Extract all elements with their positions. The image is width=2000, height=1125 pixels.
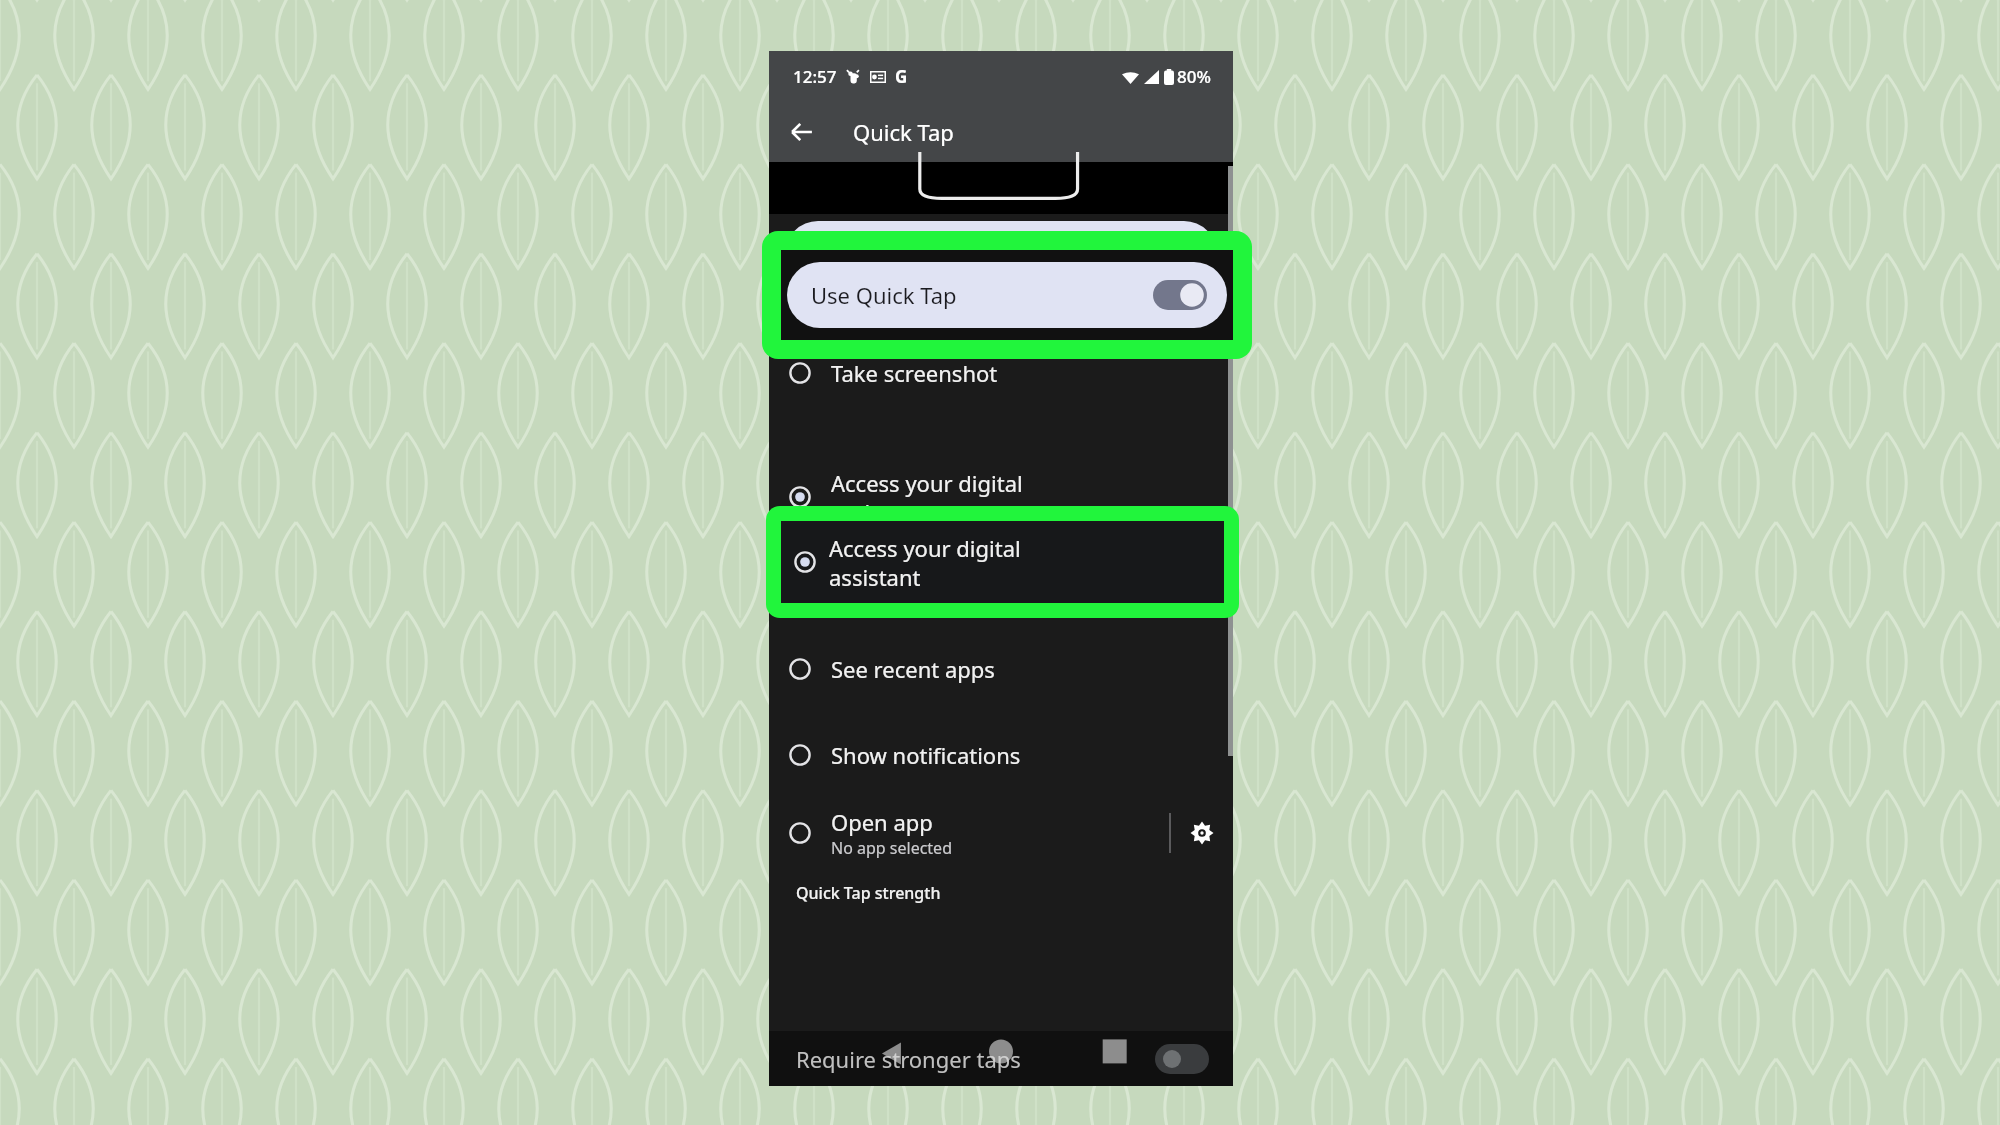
staticText: Take screenshot (831, 358, 998, 388)
staticText: Show notifications (831, 740, 1021, 770)
staticText: 12:57 (793, 65, 837, 88)
button[interactable]: Open app (769, 800, 1233, 866)
button[interactable]: Access your digital assistant (769, 456, 1233, 538)
button[interactable]: Use Quick Tap (785, 221, 1217, 287)
button[interactable]: App settings (1171, 800, 1233, 866)
staticText: See recent apps (831, 654, 995, 684)
staticText: Quick Tap (853, 117, 954, 147)
staticText: Access your digital assistant (831, 468, 1023, 527)
button[interactable]: Play or pause media (769, 552, 1233, 614)
button[interactable]: Use Quick Tap (787, 262, 1227, 328)
staticText: G (895, 65, 908, 88)
staticText: Open app (831, 807, 933, 837)
staticText: Use Quick Tap (811, 280, 957, 310)
staticText: Use Quick Tap (809, 239, 955, 269)
staticText: Quick Tap strength (796, 882, 941, 904)
button[interactable]: Back (781, 111, 823, 153)
staticText: Play or pause media (831, 568, 1041, 598)
staticText: 80% (1177, 65, 1211, 88)
button[interactable]: See recent apps (769, 638, 1233, 700)
button[interactable]: Take screenshot (769, 342, 1233, 404)
staticText: No app selected (831, 837, 952, 859)
button[interactable]: Require stronger taps (769, 1031, 1233, 1086)
staticText: Require stronger taps (796, 1044, 1021, 1074)
staticText: Access your digital assistant (829, 533, 1021, 592)
button[interactable]: Access your digital assistant (781, 521, 1224, 603)
staticText: Tap back of phone twice to (796, 304, 1001, 326)
button[interactable]: Show notifications (769, 724, 1233, 786)
